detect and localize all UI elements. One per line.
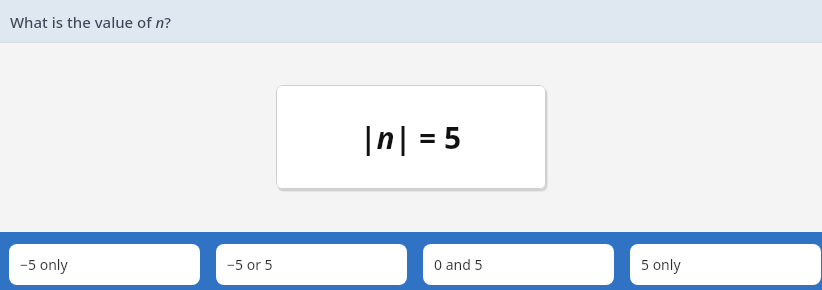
staticText: What is the value of n? [10,12,172,32]
button[interactable]: −5 only [9,244,200,285]
button[interactable]: −5 or 5 [216,244,407,285]
staticText: −5 only [20,255,68,274]
button[interactable]: 5 only [630,244,821,285]
staticText: 0 and 5 [434,255,483,274]
staticText: −5 or 5 [227,255,273,274]
button[interactable]: 0 and 5 [423,244,614,285]
staticText: |n| = 5 [360,117,462,158]
staticText: 5 only [641,255,681,274]
